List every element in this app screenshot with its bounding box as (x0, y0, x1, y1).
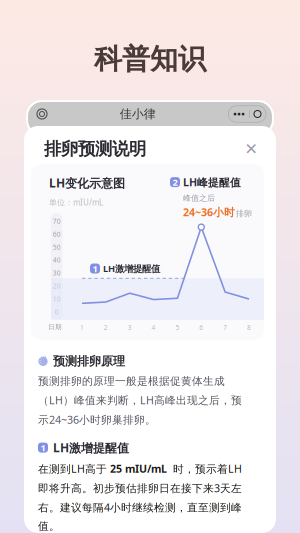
staticText: 预测排卵原理 (53, 354, 125, 369)
staticText: 排卵 (236, 209, 252, 218)
staticText: LH峰提醒值 (183, 175, 241, 189)
staticText: 单位：mIU/mL (49, 197, 103, 208)
staticText: 1 (92, 262, 97, 275)
staticText: 预测排卵的原理一般是根据促黄体生成（LH）峰值来判断，LH高峰出现之后，预示24… (38, 375, 242, 426)
staticText: 排卵预测说明 (44, 138, 146, 160)
staticText: 10 (53, 294, 61, 303)
staticText: 5 (175, 323, 179, 332)
staticText: 4 (152, 323, 156, 332)
staticText: 0 (55, 307, 59, 316)
staticText: 3 (128, 323, 132, 332)
staticText: 20 (53, 281, 61, 290)
staticText: 40 (53, 256, 61, 264)
staticText: 日期 (48, 323, 62, 331)
staticText: LH激增提醒值 (103, 262, 160, 275)
staticText: 2 (172, 176, 177, 188)
staticText: 50 (53, 243, 61, 251)
staticText: LH变化示意图 (49, 175, 125, 191)
staticText: 科普知识 (94, 42, 206, 76)
staticText: 24~36小时 (183, 205, 235, 219)
staticText: LH激增提醒值 (53, 440, 129, 456)
staticText: 60 (53, 230, 61, 239)
staticText: 峰值之后 (183, 193, 215, 203)
staticText: ✕ (244, 140, 257, 158)
staticText: ••• (233, 108, 245, 120)
staticText: 2 (104, 323, 108, 332)
staticText: 1 (40, 441, 45, 454)
staticText: 8 (247, 323, 251, 332)
staticText: 1 (80, 323, 84, 332)
button[interactable]: 关闭 (240, 138, 262, 160)
staticText: 在测到LH高于 25 mIU/mL 时，预示着LH即将升高。初步预估排卵日在接下… (38, 462, 242, 533)
staticText: 30 (53, 269, 61, 277)
staticText: 70 (53, 217, 61, 226)
staticText: 6 (199, 323, 203, 332)
staticText: 佳小律 (120, 107, 156, 121)
staticText: 7 (223, 323, 227, 332)
